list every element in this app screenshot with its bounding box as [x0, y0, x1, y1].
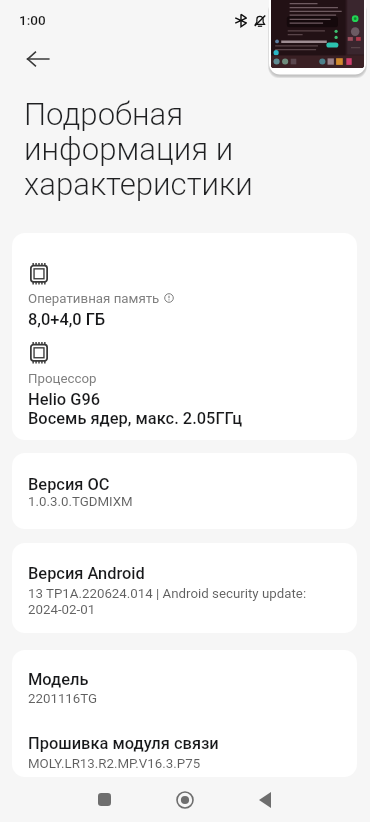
button[interactable]: Модель — [12, 650, 357, 777]
staticText: 2201116TG — [28, 690, 98, 706]
button[interactable]: Recent apps — [83, 778, 126, 821]
staticText: Модель — [28, 670, 89, 689]
staticText: Версия ОС — [28, 475, 110, 494]
button[interactable]: Back — [243, 778, 286, 821]
button[interactable]: Оперативная память — [12, 233, 357, 440]
staticText: Оперативная память — [28, 290, 160, 306]
button[interactable]: Home — [163, 778, 206, 821]
staticText: 1:00 — [19, 13, 46, 28]
staticText: 1.0.3.0.TGDMIXM — [28, 493, 133, 509]
button[interactable]: Версия Android — [12, 543, 357, 633]
staticText: MOLY.LR13.R2.MP.V16.3.P75 — [28, 755, 201, 771]
staticText: 13 TP1A.220624.014 | Android security up… — [28, 585, 343, 617]
button[interactable]: Picture in picture window — [269, 0, 366, 82]
staticText: Прошивка модуля связи — [28, 734, 219, 753]
button[interactable]: Back — [16, 37, 60, 81]
staticText: Подробная информация и характеристики — [24, 97, 336, 202]
button[interactable]: Версия ОС — [12, 453, 357, 529]
staticText: Процессор — [28, 370, 97, 386]
staticText: Helio G96 — [28, 390, 101, 409]
staticText: Восемь ядер, макс. 2.05ГГц — [28, 409, 243, 428]
staticText: 8,0+4,0 ГБ — [28, 310, 106, 329]
staticText: Версия Android — [28, 564, 145, 583]
